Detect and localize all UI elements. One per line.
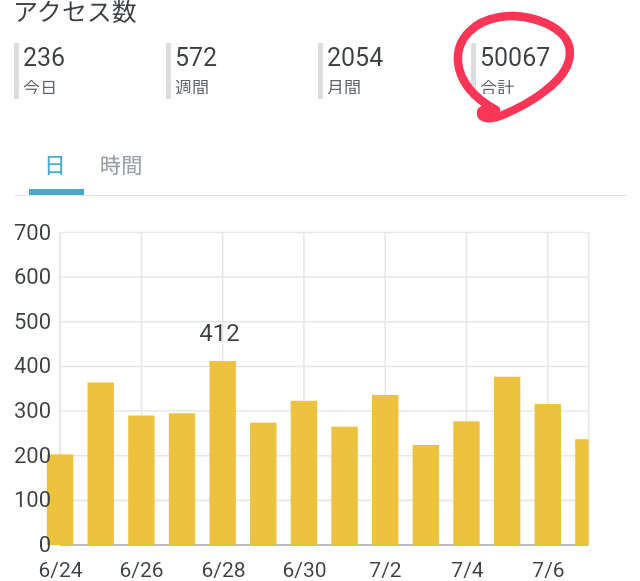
staticText: 200: [13, 443, 51, 469]
staticText: 7/2: [369, 558, 402, 581]
staticText: 700: [13, 220, 51, 246]
button[interactable]: 572: [166, 43, 311, 99]
button[interactable]: 236: [14, 43, 159, 99]
staticText: 500: [13, 309, 51, 335]
staticText: 412: [199, 319, 240, 345]
staticText: 300: [13, 398, 51, 424]
staticText: 時間: [100, 149, 142, 179]
staticText: 6/30: [282, 558, 327, 581]
staticText: 月間: [327, 74, 361, 94]
staticText: 572: [175, 43, 218, 67]
staticText: 7/4: [451, 558, 484, 581]
staticText: 236: [23, 43, 66, 67]
staticText: 合計: [480, 74, 514, 94]
staticText: 週間: [175, 74, 209, 94]
staticText: 0: [38, 532, 51, 558]
staticText: 6/26: [119, 558, 164, 581]
button[interactable]: 時間: [93, 140, 149, 187]
staticText: 50067: [480, 43, 551, 67]
staticText: 今日: [23, 74, 57, 94]
staticText: 2054: [327, 43, 384, 67]
staticText: 6/24: [38, 558, 83, 581]
staticText: 400: [13, 353, 51, 379]
staticText: アクセス数: [13, 0, 137, 28]
button[interactable]: 50067: [471, 43, 616, 99]
button[interactable]: 日: [28, 139, 82, 186]
staticText: 7/6: [532, 558, 565, 581]
staticText: 600: [13, 264, 51, 290]
button[interactable]: 2054: [318, 43, 463, 99]
staticText: 日: [44, 147, 67, 179]
staticText: 100: [13, 487, 51, 513]
staticText: 6/28: [201, 558, 246, 581]
